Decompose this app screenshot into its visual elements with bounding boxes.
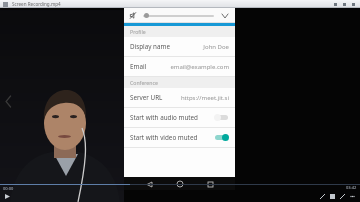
staticText: Settings bbox=[142, 13, 168, 22]
button[interactable]: Home bbox=[174, 178, 186, 190]
staticText: John Doe bbox=[203, 43, 229, 51]
staticText: Profile bbox=[130, 28, 146, 35]
button[interactable]: Email bbox=[124, 57, 235, 77]
button[interactable]: Expand bbox=[220, 11, 230, 21]
button[interactable]: Volume bbox=[144, 13, 149, 18]
button[interactable]: Fullscreen bbox=[337, 191, 347, 201]
button[interactable]: Play bbox=[3, 192, 12, 201]
button[interactable]: Minimize bbox=[331, 0, 340, 8]
staticText: Start with video muted bbox=[130, 133, 198, 142]
button[interactable]: Start with audio muted bbox=[124, 108, 235, 128]
button[interactable]: Back bbox=[143, 178, 155, 190]
button[interactable]: Close bbox=[349, 0, 358, 8]
staticText: email@example.com bbox=[170, 63, 229, 71]
button[interactable]: Display name bbox=[124, 37, 235, 57]
button[interactable]: Mute bbox=[129, 11, 138, 20]
button[interactable]: Maximize bbox=[340, 0, 349, 8]
staticText: 00:00 bbox=[3, 186, 14, 191]
staticText: Server URL bbox=[130, 93, 163, 102]
button[interactable]: More bbox=[347, 191, 357, 201]
staticText: 03:42 bbox=[346, 185, 357, 190]
button[interactable]: Settings bbox=[124, 8, 235, 26]
staticText: Conference bbox=[130, 79, 158, 86]
button[interactable]: Recents bbox=[204, 178, 216, 190]
staticText: Email bbox=[130, 62, 147, 71]
button[interactable]: Previous bbox=[1, 90, 15, 112]
staticText: Screen Recording.mp4 bbox=[12, 1, 61, 7]
staticText: Display name bbox=[130, 42, 170, 51]
button[interactable]: Stop bbox=[327, 191, 337, 201]
staticText: Start with audio muted bbox=[130, 113, 198, 122]
staticText: https://meet.jit.si bbox=[180, 94, 229, 102]
button[interactable]: Start with video muted bbox=[124, 128, 235, 148]
button[interactable]: Server URL bbox=[124, 88, 235, 108]
button[interactable]: Edit bbox=[317, 191, 327, 201]
